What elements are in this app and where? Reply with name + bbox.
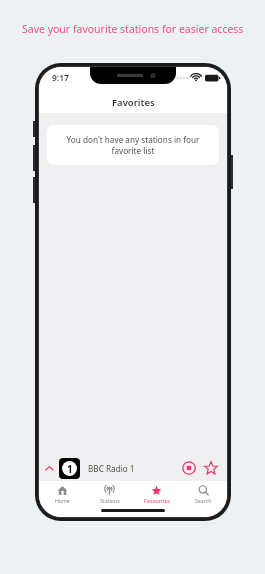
staticText: Home — [55, 497, 70, 504]
staticText: Save your favourite stations for easier … — [22, 22, 244, 36]
button[interactable]: Home — [39, 481, 86, 507]
button[interactable]: Search — [180, 481, 227, 507]
staticText: Search — [195, 497, 212, 504]
staticText: Stations — [100, 497, 120, 504]
button[interactable]: Favourites — [133, 481, 180, 507]
staticText: Favourites — [144, 497, 170, 504]
staticText: BBC Radio 1 — [88, 463, 178, 474]
button[interactable]: Add to favourites — [200, 457, 222, 479]
button[interactable]: BBC Radio 1 logo — [59, 458, 80, 479]
staticText: 9:17 — [52, 72, 69, 84]
staticText: Favorites — [112, 96, 155, 109]
button[interactable]: You don't have any stations in four favo… — [47, 125, 219, 165]
button[interactable]: Expand player — [39, 455, 59, 481]
button[interactable]: Stop — [178, 457, 200, 479]
staticText: You don't have any stations in four favo… — [57, 134, 209, 156]
staticText: 1 — [67, 462, 73, 476]
button[interactable]: Stations — [86, 481, 133, 507]
